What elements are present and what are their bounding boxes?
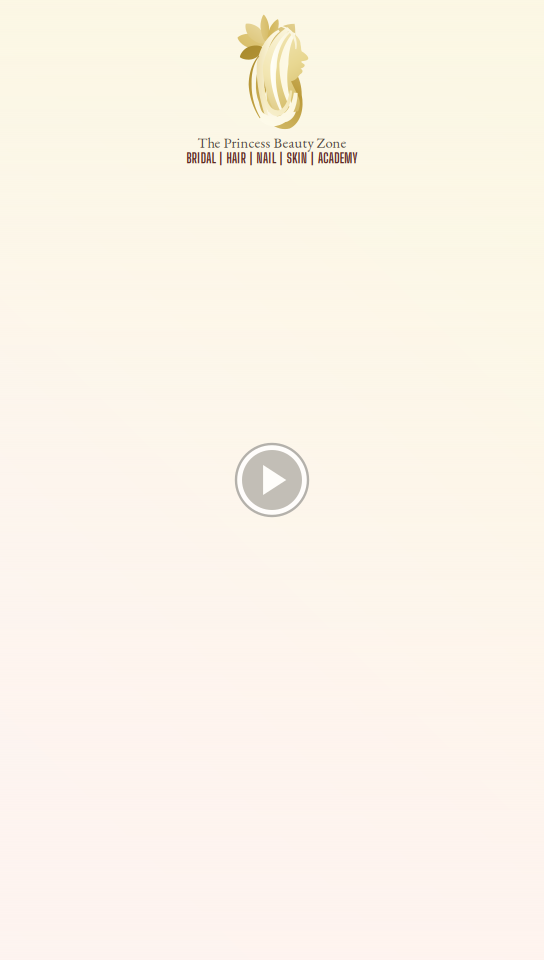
staticText: BRIDAL | HAIR | NAIL | SKIN | ACADEMY [186,151,358,166]
staticText: The Princess Beauty Zone [197,133,346,152]
button[interactable]: Play [232,440,312,520]
